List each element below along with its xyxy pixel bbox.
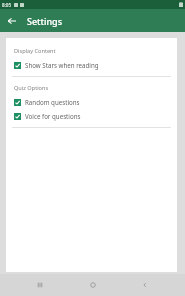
staticText: Show Stars when reading xyxy=(25,61,99,69)
button[interactable]: Recent apps xyxy=(27,274,53,296)
staticText: Display Content xyxy=(14,47,56,55)
button[interactable]: Back xyxy=(0,9,23,32)
staticText: Random questions xyxy=(25,98,80,106)
staticText: Settings xyxy=(27,15,63,27)
button[interactable]: Random questions xyxy=(6,96,177,108)
button[interactable]: Voice for questions xyxy=(6,110,177,122)
button[interactable]: Show Stars when reading xyxy=(6,59,177,71)
button[interactable]: Home xyxy=(80,274,106,296)
button[interactable]: Back xyxy=(132,274,158,296)
staticText: 8:05 xyxy=(2,2,12,8)
staticText: Voice for questions xyxy=(25,112,81,120)
staticText: Quiz Options xyxy=(14,84,49,92)
